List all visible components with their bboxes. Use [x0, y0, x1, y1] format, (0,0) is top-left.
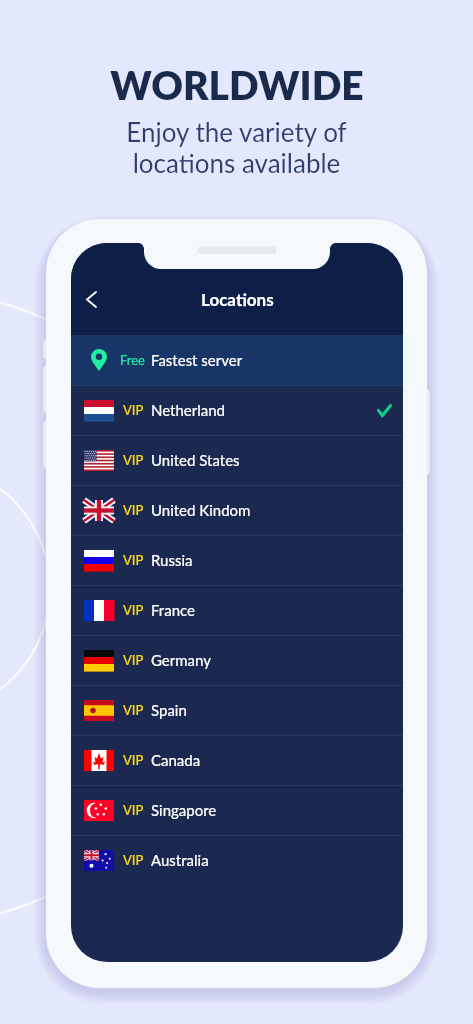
staticText: VIP	[123, 602, 144, 618]
staticText: VIP	[123, 402, 144, 418]
staticText: Germany	[151, 651, 211, 669]
staticText: VIP	[123, 552, 144, 568]
button[interactable]: VIP	[71, 685, 403, 735]
staticText: Free	[120, 352, 145, 368]
staticText: Enjoy the variety of locations available	[126, 116, 347, 179]
staticText: United Kindom	[151, 501, 251, 519]
staticText: Fastest server	[151, 351, 243, 369]
button[interactable]: VIP	[71, 485, 403, 535]
staticText: Locations	[201, 289, 274, 309]
button[interactable]: Back	[71, 279, 111, 319]
button[interactable]: VIP	[71, 835, 403, 885]
staticText: Spain	[151, 701, 187, 719]
button[interactable]: VIP	[71, 785, 403, 835]
staticText: France	[151, 601, 195, 619]
staticText: Netherland	[151, 401, 225, 419]
button[interactable]: VIP	[71, 385, 403, 435]
staticText: Australia	[151, 851, 209, 869]
staticText: VIP	[123, 802, 144, 818]
button[interactable]: VIP	[71, 735, 403, 785]
staticText: Russia	[151, 551, 193, 569]
staticText: VIP	[123, 852, 144, 868]
button[interactable]: VIP	[71, 435, 403, 485]
staticText: Canada	[151, 751, 201, 769]
staticText: VIP	[123, 702, 144, 718]
staticText: WORLDWIDE	[110, 62, 364, 109]
staticText: VIP	[123, 452, 144, 468]
staticText: VIP	[123, 502, 144, 518]
staticText: VIP	[123, 752, 144, 768]
button[interactable]: VIP	[71, 635, 403, 685]
staticText: Singapore	[151, 801, 217, 819]
button[interactable]: VIP	[71, 585, 403, 635]
button[interactable]: Free	[71, 335, 403, 385]
staticText: United States	[151, 451, 240, 469]
button[interactable]: VIP	[71, 535, 403, 585]
staticText: VIP	[123, 652, 144, 668]
